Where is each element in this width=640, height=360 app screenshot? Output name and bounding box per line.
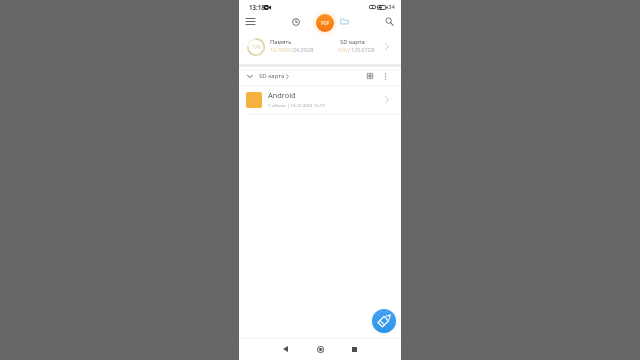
- button[interactable]: Home: [311, 340, 329, 358]
- button[interactable]: SD карта: [259, 66, 289, 86]
- button[interactable]: PDF tools: [316, 14, 334, 32]
- button[interactable]: Clean up storage: [372, 309, 396, 333]
- staticText: /24.35GB: [291, 46, 314, 53]
- staticText: SD карта: [259, 72, 285, 80]
- staticText: 77%: [252, 44, 261, 50]
- button[interactable]: Recent apps: [345, 340, 363, 358]
- button[interactable]: Grid view: [364, 70, 376, 82]
- button[interactable]: SD карта: [338, 38, 386, 53]
- button[interactable]: Back: [276, 340, 294, 358]
- staticText: 13:18: [249, 3, 265, 11]
- button[interactable]: More options: [379, 70, 391, 82]
- button[interactable]: Android: [239, 87, 401, 114]
- staticText: N/A: [338, 46, 348, 53]
- button[interactable]: Память: [270, 38, 336, 53]
- staticText: 34: [388, 3, 395, 11]
- staticText: / 125.07GB: [348, 46, 375, 53]
- button[interactable]: Collapse section: [245, 71, 255, 81]
- staticText: Android: [268, 90, 296, 100]
- button[interactable]: Search: [381, 14, 397, 29]
- staticText: SD карта: [340, 38, 365, 46]
- staticText: 1 объект | 10.12.2024 13:17: [268, 102, 325, 108]
- staticText: 18.78GB: [270, 46, 291, 53]
- button[interactable]: Recent files: [288, 14, 304, 29]
- staticText: Память: [270, 38, 292, 46]
- staticText: PDF: [321, 20, 330, 26]
- button[interactable]: Folders: [336, 14, 352, 29]
- button[interactable]: Menu: [242, 14, 258, 29]
